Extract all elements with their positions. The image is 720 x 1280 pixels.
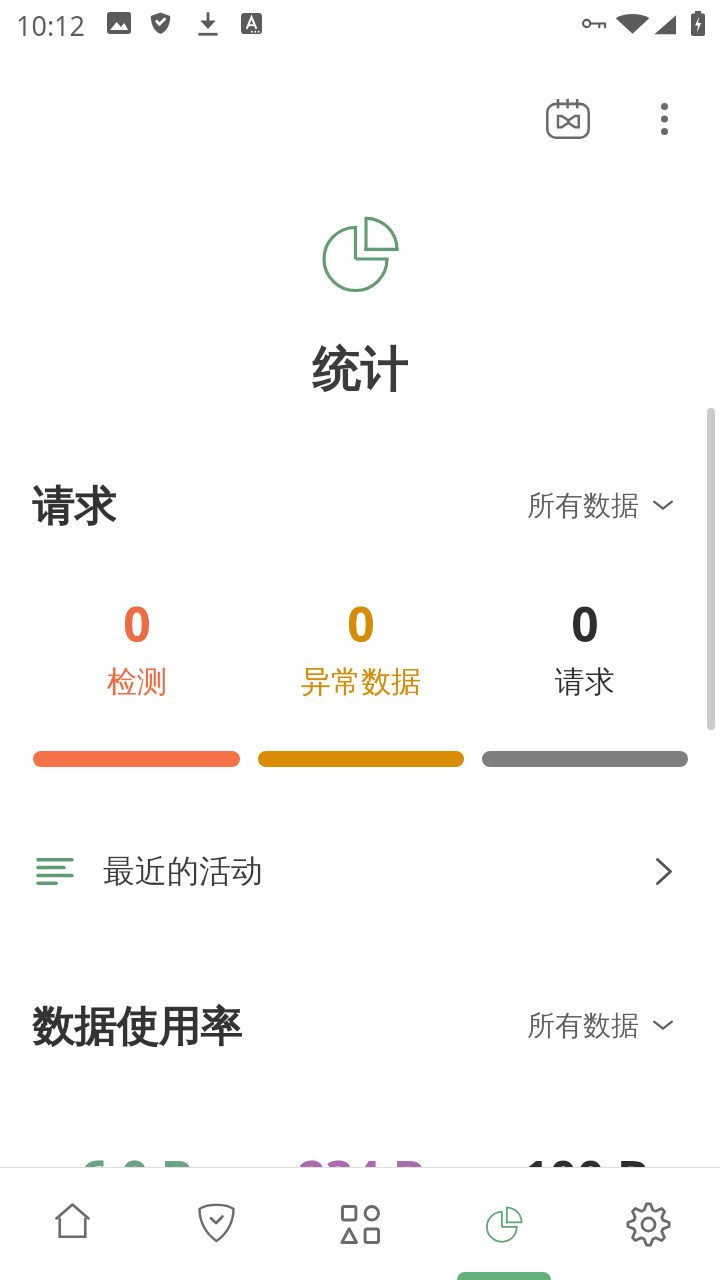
staticText: 已接收 <box>316 1217 406 1255</box>
staticText: 数据使用率 <box>32 1001 242 1049</box>
staticText: 6.0 B <box>80 1145 193 1210</box>
button[interactable]: 100 B <box>482 1145 688 1255</box>
staticText: 0 <box>123 591 151 656</box>
button[interactable]: 6.0 B <box>33 1145 240 1255</box>
button[interactable]: Home <box>0 1168 144 1280</box>
button[interactable]: Statistics <box>432 1168 576 1280</box>
staticText: 请求 <box>555 663 615 701</box>
staticText: 100 B <box>522 1145 649 1210</box>
staticText: 所有数据 <box>527 488 639 523</box>
button[interactable]: 234 B <box>258 1145 464 1255</box>
staticText: 10:12 <box>16 7 86 44</box>
button[interactable]: Calendar <box>534 85 602 153</box>
button[interactable]: 最近的活动 <box>0 843 720 899</box>
staticText: 检测 <box>107 663 167 701</box>
staticText: 最近的活动 <box>103 851 263 891</box>
button[interactable]: 所有数据 <box>509 1001 720 1049</box>
button[interactable]: 0 <box>482 591 688 701</box>
staticText: 所有数据 <box>527 1008 639 1043</box>
button[interactable]: 0 <box>33 591 240 701</box>
button[interactable]: 所有数据 <box>509 481 720 529</box>
staticText: 请求 <box>32 481 116 529</box>
staticText: 0 <box>571 591 599 656</box>
button[interactable]: 0 <box>258 591 464 701</box>
button[interactable]: Settings <box>576 1168 720 1280</box>
staticText: 234 B <box>298 1145 425 1210</box>
staticText: 异常数据 <box>301 663 421 701</box>
button[interactable]: Apps <box>288 1168 432 1280</box>
staticText: 统计 <box>312 340 408 396</box>
staticText: 0 <box>347 591 375 656</box>
button[interactable]: More options <box>626 81 702 157</box>
button[interactable]: Protection <box>144 1168 288 1280</box>
